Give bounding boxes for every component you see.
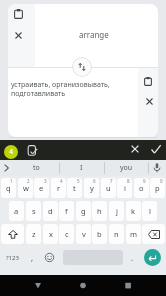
staticText: b (97, 229, 102, 239)
staticText: p (155, 183, 160, 193)
button[interactable]: n (109, 224, 124, 244)
button[interactable]: x (43, 224, 58, 244)
staticText: 8 (127, 178, 130, 184)
staticText: l (149, 206, 151, 216)
button[interactable]: o (134, 178, 149, 198)
staticText: j (116, 206, 118, 216)
button[interactable]: I (59, 160, 104, 176)
button[interactable]: g (76, 201, 91, 221)
button[interactable]: b (92, 224, 107, 244)
button[interactable] (144, 249, 161, 266)
button[interactable]: v (76, 224, 91, 244)
staticText: 1 (10, 178, 13, 184)
button[interactable] (27, 145, 39, 157)
staticText: k (131, 206, 136, 216)
staticText: x (49, 229, 53, 239)
button[interactable] (127, 140, 143, 157)
staticText: c (65, 229, 69, 239)
staticText: . (131, 252, 134, 263)
button[interactable]: r (51, 178, 66, 198)
staticText: 2 (27, 178, 30, 184)
staticText: you (120, 163, 133, 173)
staticText: r (57, 183, 61, 193)
staticText: d (48, 206, 53, 216)
staticText: 6 (93, 178, 96, 184)
button[interactable]: , (25, 247, 40, 268)
button[interactable]: l (142, 201, 157, 221)
staticText: w (23, 183, 29, 193)
staticText: n (114, 229, 119, 239)
button[interactable]: q (1, 178, 16, 198)
button[interactable]: z (26, 224, 41, 244)
staticText: 5 (77, 178, 80, 184)
button[interactable]: w (18, 178, 33, 198)
staticText: 4 (9, 147, 14, 157)
staticText: 7 (110, 178, 113, 184)
button[interactable]: k (126, 201, 141, 221)
button[interactable]: ?123 (0, 247, 24, 268)
button[interactable]: s (26, 201, 41, 221)
button[interactable] (0, 160, 13, 176)
staticText: v (82, 229, 86, 239)
staticText: t (73, 183, 76, 193)
button[interactable]: d (43, 201, 58, 221)
button[interactable]: 4 (4, 145, 18, 159)
staticText: a (14, 206, 19, 216)
button[interactable]: p (150, 178, 165, 198)
staticText: s (32, 206, 36, 216)
staticText: m (130, 229, 138, 239)
button[interactable]: u (101, 178, 116, 198)
staticText: y (90, 183, 94, 193)
staticText: g (81, 206, 86, 216)
staticText: 3 (44, 178, 47, 184)
button[interactable] (8, 4, 35, 67)
button[interactable] (1, 224, 24, 244)
button[interactable]: e (34, 178, 49, 198)
button[interactable]: i (117, 178, 132, 198)
staticText: q (6, 183, 11, 193)
staticText: z (32, 229, 36, 239)
button[interactable]: f (59, 201, 74, 221)
staticText: ?123 (6, 254, 19, 262)
button[interactable] (41, 247, 58, 268)
button[interactable]: a (9, 201, 24, 221)
staticText: 4 (60, 178, 63, 184)
staticText: i (124, 183, 126, 193)
staticText: I (80, 163, 83, 173)
button[interactable]: you (104, 160, 148, 176)
staticText: устраивать, организовывать, подготавлива… (11, 80, 110, 98)
button[interactable] (72, 57, 92, 77)
button[interactable]: c (59, 224, 74, 244)
button[interactable]: h (92, 201, 107, 221)
staticText: u (106, 183, 111, 193)
button[interactable] (119, 277, 137, 295)
button[interactable]: m (126, 224, 141, 244)
staticText: 0 (160, 178, 163, 184)
button[interactable]: arrange (29, 4, 158, 64)
button[interactable] (138, 68, 158, 137)
staticText: 9 (143, 178, 146, 184)
button[interactable] (142, 224, 165, 244)
button[interactable] (74, 277, 92, 295)
button[interactable] (29, 277, 47, 295)
button[interactable] (148, 160, 166, 176)
staticText: o (139, 183, 144, 193)
staticText: e (39, 183, 44, 193)
button[interactable]: . (126, 247, 139, 268)
staticText: , (31, 252, 34, 263)
button[interactable] (147, 140, 164, 157)
button[interactable]: j (109, 201, 124, 221)
staticText: h (97, 206, 102, 216)
button[interactable]: y (84, 178, 99, 198)
button[interactable]: t (67, 178, 82, 198)
staticText: f (65, 206, 68, 216)
button[interactable]: to (13, 160, 59, 176)
staticText: to (33, 163, 40, 173)
staticText: arrange (79, 29, 109, 40)
